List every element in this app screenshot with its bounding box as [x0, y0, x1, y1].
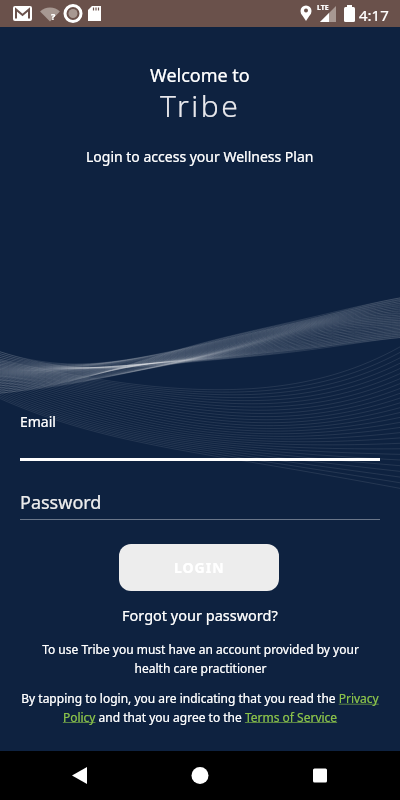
staticText: Password — [20, 490, 102, 515]
staticText: ? — [51, 10, 56, 22]
button[interactable]: Forgot your password? — [122, 605, 278, 625]
staticText: Tribe — [160, 85, 241, 126]
button[interactable]: By tapping to login, you are indicating … — [21, 690, 379, 725]
staticText: LOGIN — [174, 558, 225, 577]
button[interactable] — [296, 751, 344, 800]
button[interactable]: Password — [20, 488, 380, 521]
button[interactable]: LOGIN — [119, 544, 279, 591]
staticText: Welcome to — [150, 63, 250, 88]
staticText: Forgot your password? — [122, 605, 278, 625]
staticText: Login to access your Wellness Plan — [86, 147, 314, 166]
staticText: 4:17 — [359, 5, 389, 25]
staticText: LTE — [317, 3, 329, 13]
staticText: To use Tribe you must have an account pr… — [42, 641, 359, 676]
staticText: By tapping to login, you are indicating … — [21, 690, 379, 725]
button[interactable] — [176, 751, 224, 800]
staticText: Email — [20, 412, 56, 431]
button[interactable] — [56, 751, 104, 800]
button[interactable]: Email — [20, 410, 380, 461]
